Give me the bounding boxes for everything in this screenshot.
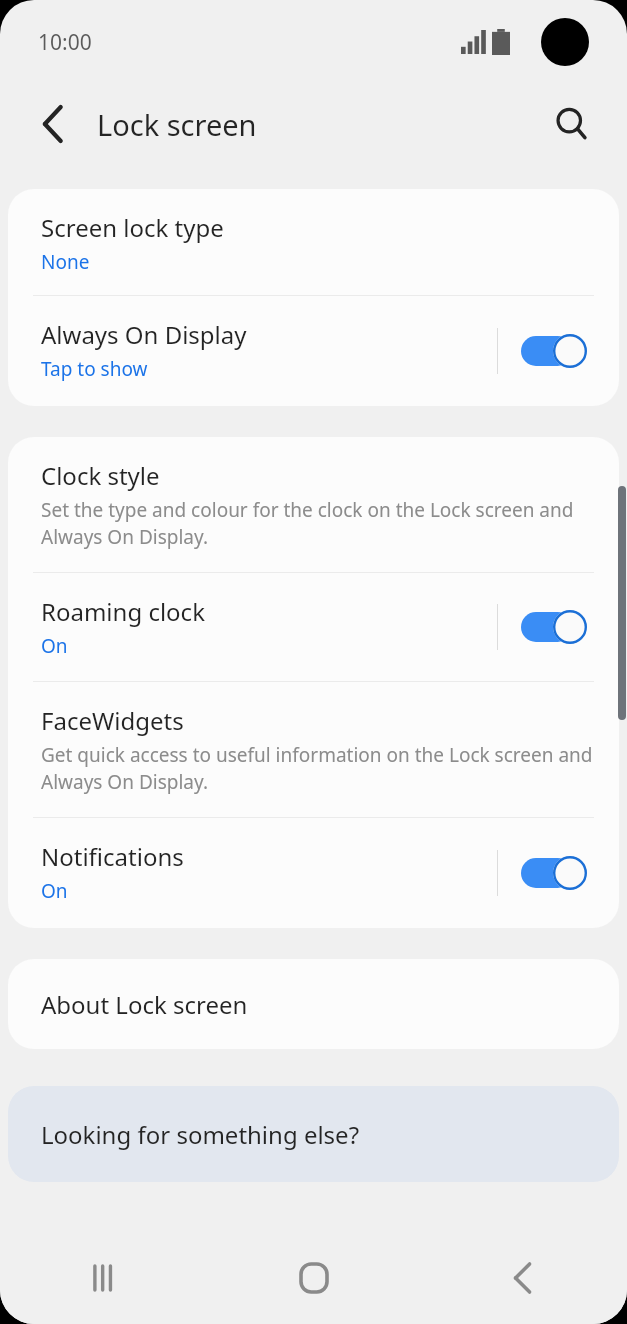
button[interactable]: Home <box>209 1232 418 1324</box>
staticText: Notifications <box>41 840 184 873</box>
staticText: Set the type and colour for the clock on… <box>41 497 603 550</box>
staticText: None <box>41 249 90 275</box>
button[interactable]: Roaming clock <box>8 573 619 681</box>
staticText: 10:00 <box>38 28 92 57</box>
staticText: Screen lock type <box>41 211 224 244</box>
staticText: On <box>41 878 68 904</box>
button[interactable]: Always On Display <box>8 296 619 406</box>
staticText: Clock style <box>41 459 160 492</box>
button[interactable]: Back <box>418 1232 627 1324</box>
button[interactable]: Toggle Always On Display <box>514 323 594 379</box>
staticText: FaceWidgets <box>41 704 184 737</box>
button[interactable]: Recents <box>0 1232 209 1324</box>
staticText: Get quick access to useful information o… <box>41 742 603 795</box>
staticText: Tap to show <box>41 356 148 382</box>
button[interactable]: FaceWidgets <box>8 682 619 817</box>
button[interactable]: Toggle Roaming clock <box>514 599 594 655</box>
staticText: Always On Display <box>41 318 247 351</box>
staticText: On <box>41 633 68 659</box>
button[interactable]: Search <box>543 95 601 153</box>
button[interactable]: Toggle Notifications <box>514 845 594 901</box>
staticText: Looking for something else? <box>41 1118 360 1151</box>
staticText: About Lock screen <box>41 988 248 1021</box>
staticText: Lock screen <box>97 105 257 144</box>
button[interactable]: Screen lock type <box>8 189 619 295</box>
button[interactable]: About Lock screen <box>8 959 619 1049</box>
button[interactable]: Notifications <box>8 818 619 928</box>
button[interactable]: Looking for something else? <box>8 1086 619 1182</box>
staticText: Roaming clock <box>41 595 205 628</box>
button[interactable]: Back <box>26 96 82 152</box>
button[interactable]: Clock style <box>8 437 619 572</box>
